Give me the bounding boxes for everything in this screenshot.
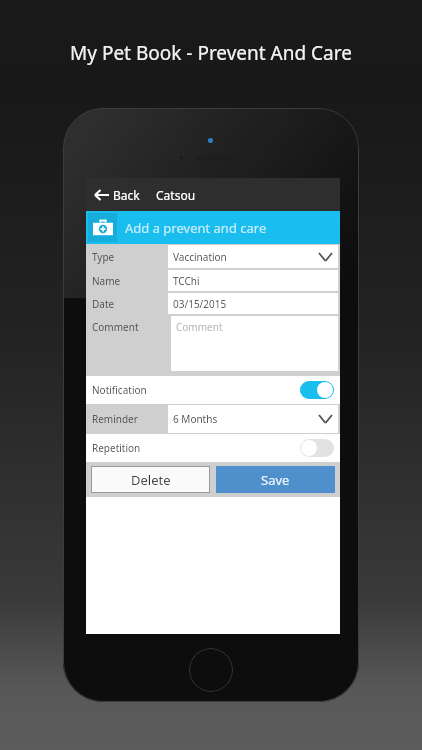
staticText: Comment	[92, 320, 139, 334]
button[interactable]: Type	[86, 244, 340, 269]
button[interactable]: Date	[86, 292, 340, 315]
staticText: Catsou	[156, 187, 196, 203]
button[interactable]: Comment	[86, 315, 340, 373]
button[interactable]: Delete	[91, 466, 210, 493]
staticText: Add a prevent and care	[125, 219, 267, 237]
staticText: My Pet Book - Prevent And Care	[70, 40, 352, 66]
staticText: Type	[92, 250, 115, 264]
button[interactable]: Save	[216, 466, 335, 493]
staticText: Vaccination	[173, 250, 227, 264]
staticText: Date	[92, 297, 115, 311]
button[interactable]: Repetition	[86, 434, 340, 462]
staticText: Notification	[92, 383, 147, 397]
staticText: Reminder	[92, 412, 138, 426]
staticText: 6 Months	[173, 412, 218, 426]
staticText: Back	[113, 187, 140, 203]
button[interactable]: Notification	[86, 376, 340, 404]
staticText: Save	[261, 471, 290, 489]
staticText: Name	[92, 274, 121, 288]
button[interactable]: Name	[86, 269, 340, 292]
other: Repetition off	[300, 439, 334, 457]
staticText: Repetition	[92, 441, 141, 455]
staticText: Comment	[176, 320, 223, 334]
button[interactable]: Back	[86, 178, 146, 211]
other: Prevent and care	[93, 218, 113, 238]
other: Notification on	[300, 381, 334, 399]
staticText: 03/15/2015	[173, 297, 227, 311]
staticText: TCChi	[173, 274, 200, 288]
staticText: Delete	[131, 471, 171, 489]
button[interactable]: Reminder	[86, 404, 340, 434]
